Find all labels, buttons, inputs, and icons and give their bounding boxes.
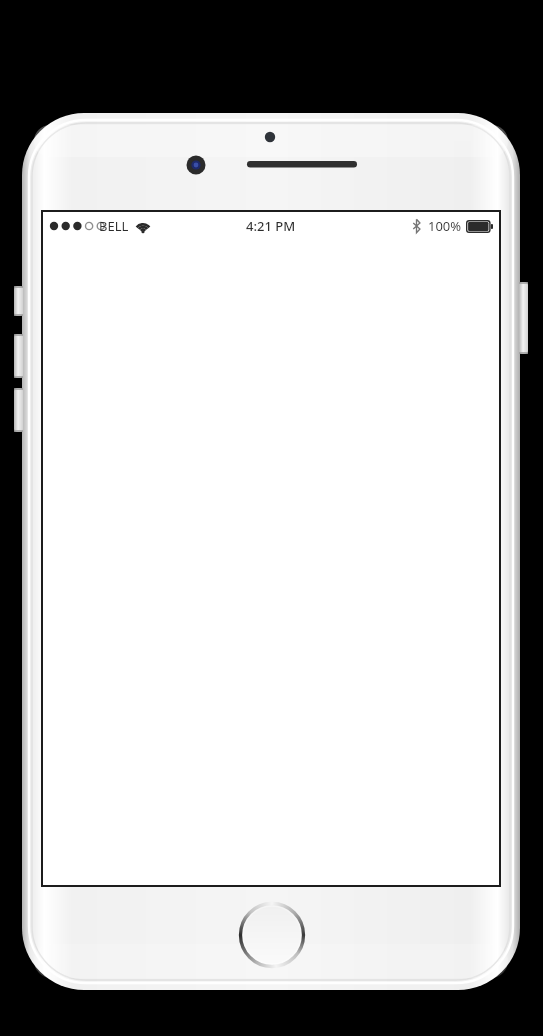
button[interactable]: Volume down bbox=[14, 388, 23, 432]
button[interactable]: Volume up bbox=[14, 334, 23, 378]
staticText: BELL bbox=[99, 217, 129, 235]
staticText: 4:21 PM bbox=[246, 217, 296, 235]
button[interactable]: Mute switch bbox=[14, 286, 23, 316]
button[interactable]: Home bbox=[238, 901, 306, 969]
staticText: 100% bbox=[428, 217, 462, 235]
button[interactable]: Power bbox=[519, 282, 528, 354]
